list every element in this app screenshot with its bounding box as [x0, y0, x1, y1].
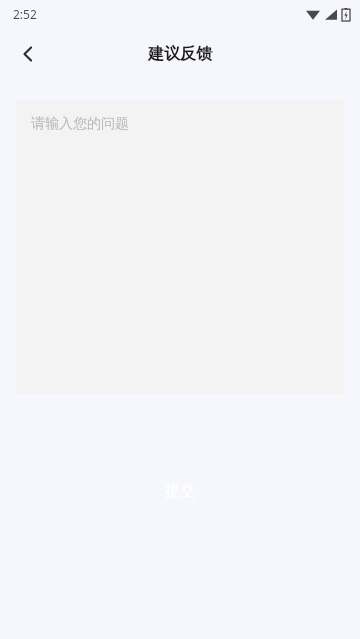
- button[interactable]: Back: [10, 36, 46, 72]
- staticText: 建议反馈: [148, 44, 212, 64]
- staticText: 2:52: [13, 6, 37, 22]
- staticText: 请输入您的问题: [31, 115, 129, 133]
- button[interactable]: 请输入您的问题: [16, 100, 344, 394]
- staticText: 提交: [165, 482, 195, 501]
